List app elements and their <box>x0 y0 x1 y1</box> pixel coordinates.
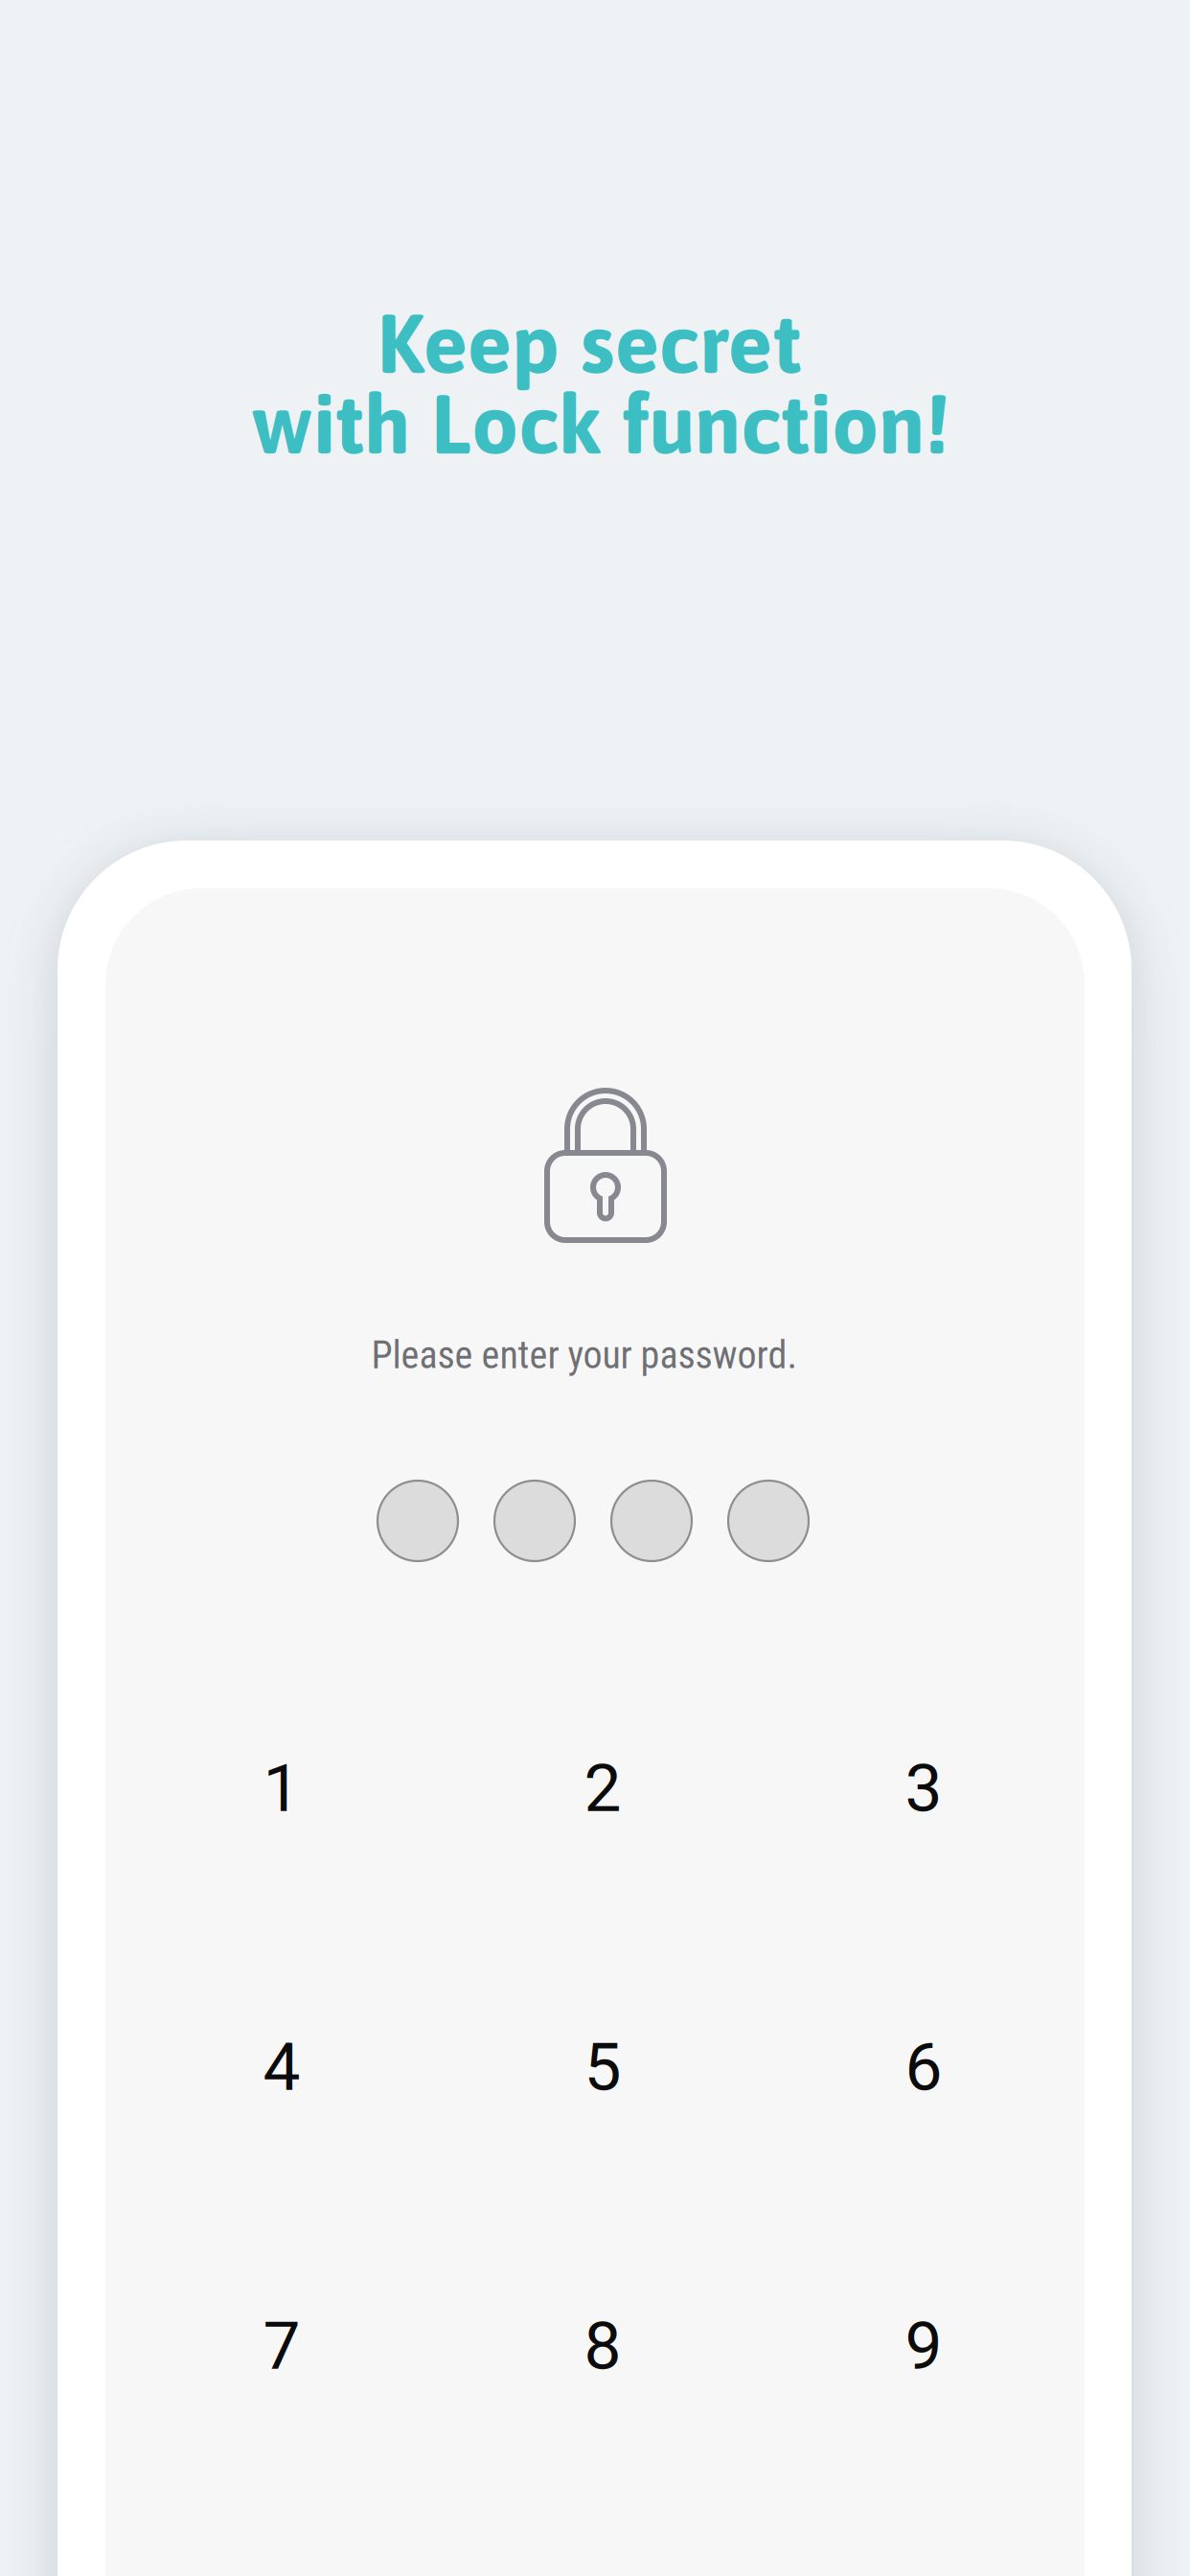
staticText: 8 <box>584 2307 621 2385</box>
staticText: 3 <box>905 1749 942 1827</box>
button[interactable]: 6 <box>770 1939 1077 2196</box>
staticText: with Lock function! <box>251 376 949 471</box>
staticText: 5 <box>584 2028 621 2106</box>
button[interactable]: 2 <box>449 1660 756 1917</box>
button[interactable]: 7 <box>128 2218 435 2474</box>
staticText: 7 <box>263 2307 300 2385</box>
staticText: 9 <box>905 2307 942 2385</box>
staticText: 2 <box>584 1749 621 1827</box>
staticText: 4 <box>263 2028 300 2106</box>
staticText: Keep secret <box>377 295 801 391</box>
staticText: 6 <box>905 2028 942 2106</box>
staticText: 1 <box>263 1749 300 1827</box>
button[interactable]: 9 <box>770 2218 1077 2474</box>
button[interactable]: 3 <box>770 1660 1077 1917</box>
staticText: Please enter your password. <box>371 1333 798 1378</box>
button[interactable]: 1 <box>128 1660 435 1917</box>
button[interactable]: 8 <box>449 2218 756 2474</box>
button[interactable]: 5 <box>449 1939 756 2196</box>
button[interactable]: 4 <box>128 1939 435 2196</box>
